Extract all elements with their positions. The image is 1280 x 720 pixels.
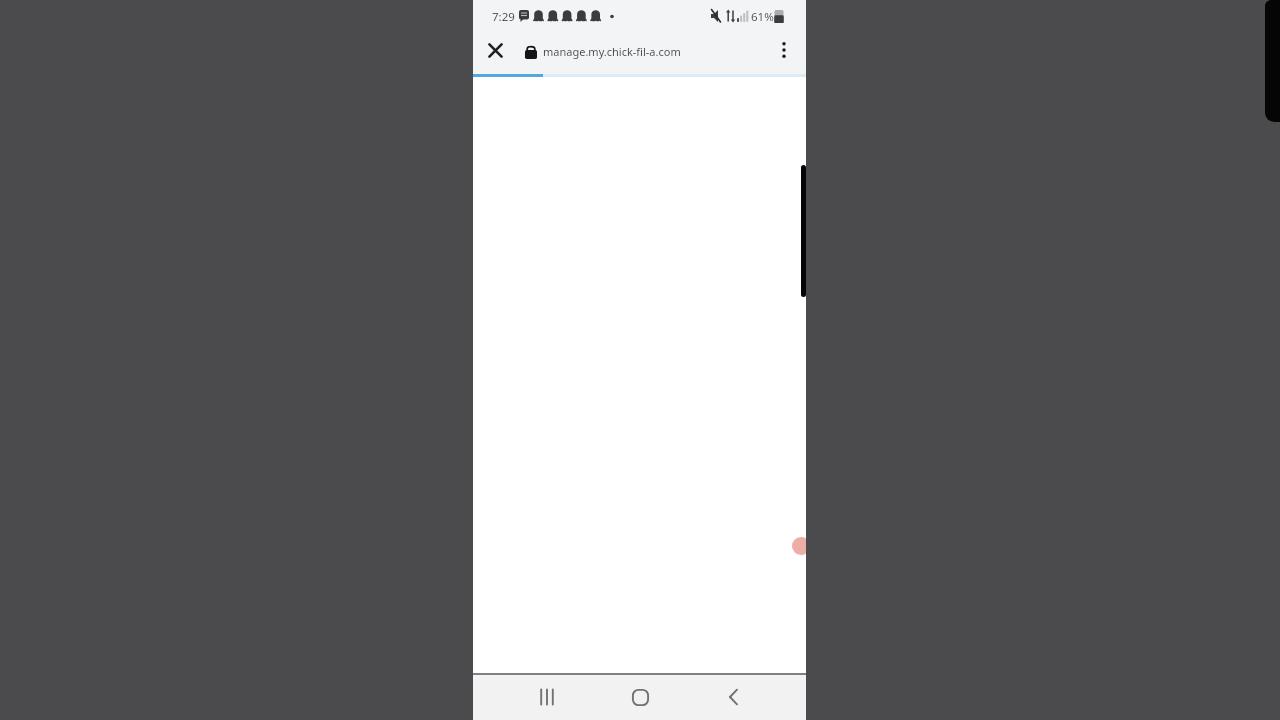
button[interactable] xyxy=(625,682,655,712)
button[interactable] xyxy=(801,165,806,297)
button[interactable] xyxy=(532,682,562,712)
staticText: 7:29 xyxy=(492,9,515,25)
button[interactable]: manage.my.chick-fil-a.com xyxy=(525,31,681,72)
button[interactable] xyxy=(480,35,510,65)
button[interactable] xyxy=(718,682,748,712)
staticText: 61% xyxy=(751,9,774,25)
button[interactable] xyxy=(769,35,799,65)
staticText: manage.my.chick-fil-a.com xyxy=(543,44,681,59)
